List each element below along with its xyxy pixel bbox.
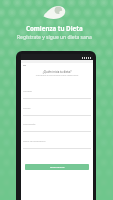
staticText: Regístrate y sigue un dieta sana [17, 34, 92, 41]
staticText: Nombre [23, 90, 32, 93]
button[interactable]: REGISTRARSE [25, 164, 89, 170]
staticText: REGISTRARSE [50, 166, 65, 169]
staticText: Comienza tu Dieta [26, 24, 83, 32]
staticText: Completa el formulario para registrarte [21, 74, 93, 77]
staticText: ¿Quién inicia tu dieta? [21, 70, 93, 74]
staticText: Correo [23, 107, 31, 110]
staticText: Fecha de nacimiento [23, 140, 46, 143]
other: Healthy food illustration [43, 3, 67, 20]
staticText: Contraseña [23, 123, 36, 126]
